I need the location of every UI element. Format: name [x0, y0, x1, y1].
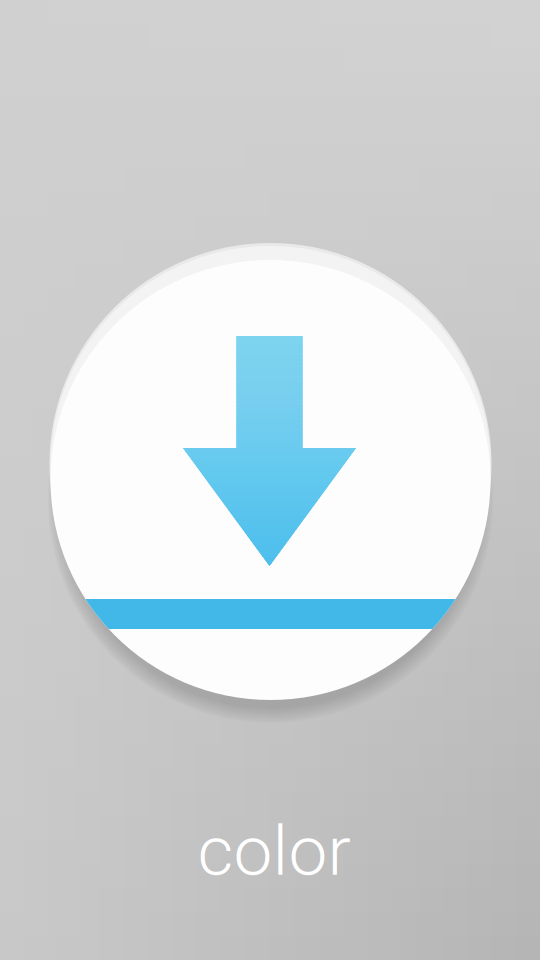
staticText: color: [197, 810, 350, 892]
button[interactable]: color: [49, 243, 491, 700]
